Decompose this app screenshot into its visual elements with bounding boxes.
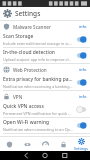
staticText: Include external/internal storage in sca… (3, 41, 73, 46)
button[interactable]: Extra privacy for banking pages (0, 75, 90, 90)
button[interactable]: VPN (54, 137, 72, 151)
staticText: Scan Storage (3, 33, 34, 40)
staticText: Extra privacy for banking pages (3, 76, 73, 83)
staticText: Permanent VPN notification for quick acc… (3, 111, 73, 116)
button[interactable]: Off (76, 106, 87, 113)
staticText: Notification when connecting to an Open … (3, 127, 73, 132)
staticText: Malware Scanner (13, 24, 79, 30)
button[interactable]: On (76, 122, 87, 129)
staticText: Settings (74, 146, 88, 151)
staticText: Settings (15, 9, 41, 18)
staticText: Notification when accessing a banking pa… (3, 84, 73, 89)
button[interactable]: info (79, 24, 87, 29)
button[interactable]: Performance (36, 137, 54, 151)
button[interactable]: Scan Storage (0, 32, 90, 47)
staticText: Open Wi-Fi warning (3, 119, 49, 126)
staticText: Quick VPN access (3, 103, 44, 110)
button[interactable]: Quick VPN access (0, 102, 90, 117)
button[interactable]: info (79, 94, 87, 99)
button[interactable]: In-the-cloud detection (0, 48, 90, 63)
staticText: VPN (13, 94, 79, 100)
button[interactable]: Open Wi-Fi warning (0, 118, 90, 133)
staticText: Web Protection (13, 67, 79, 73)
button[interactable]: On (76, 52, 87, 59)
staticText: Upload suspect app info to improve cloud… (3, 57, 73, 62)
button[interactable]: Web Protection (0, 64, 90, 75)
button[interactable]: VPN (0, 91, 90, 102)
button[interactable]: Malware Scanner (0, 21, 90, 32)
button[interactable]: On (76, 36, 87, 43)
button[interactable]: On (76, 79, 87, 86)
button[interactable]: Privacy (18, 137, 36, 151)
button[interactable]: Settings (72, 137, 90, 151)
staticText: In-the-cloud detection (3, 49, 55, 56)
button[interactable]: info (79, 67, 87, 72)
button[interactable]: Protection (0, 137, 18, 151)
button[interactable]: Settings (3, 9, 12, 18)
